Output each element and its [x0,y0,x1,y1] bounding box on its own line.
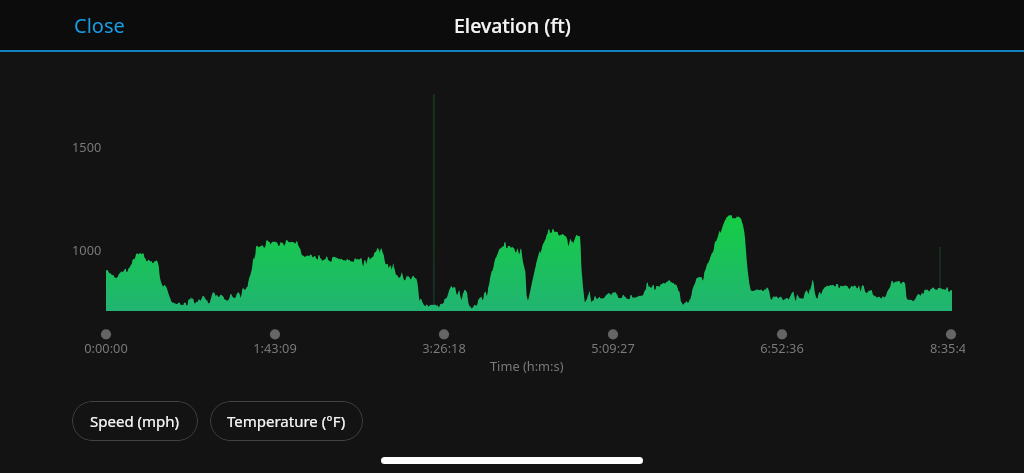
staticText: 8:35:45 [930,339,965,356]
staticText: 5:09:27 [563,339,663,356]
staticText: 1000 [72,241,102,258]
staticText: Temperature (°F) [227,411,346,431]
staticText: 1500 [72,138,102,155]
staticText: 1:43:09 [225,339,325,356]
staticText: 3:26:18 [394,339,494,356]
button[interactable]: Temperature (°F) [210,401,363,441]
button[interactable]: Speed (mph) [72,401,198,441]
staticText: 6:52:36 [732,339,832,356]
staticText: Elevation (ft) [454,12,571,39]
staticText: 0:00:00 [56,339,156,356]
staticText: Close [74,12,125,39]
staticText: Time (h:m:s) [490,357,564,374]
staticText: Speed (mph) [90,411,180,431]
button[interactable]: Close [62,2,137,49]
